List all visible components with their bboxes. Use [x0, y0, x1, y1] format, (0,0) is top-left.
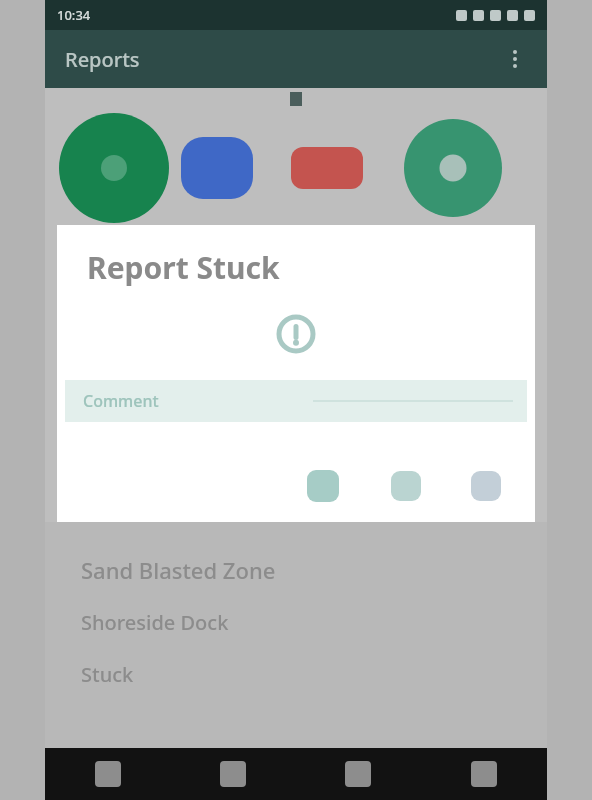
button[interactable]: Home	[45, 748, 170, 800]
button[interactable]: More options	[493, 37, 537, 81]
button[interactable]: Reports	[170, 748, 295, 800]
button[interactable]: Delete	[291, 147, 363, 189]
button[interactable]: Sync	[181, 137, 253, 199]
button[interactable]: Shoreside Dock	[45, 596, 547, 648]
button[interactable]: New report	[59, 113, 169, 223]
button[interactable]: Profile	[421, 748, 547, 800]
staticText: Sand Blasted Zone	[81, 555, 276, 585]
staticText: 10:34	[57, 6, 91, 24]
button[interactable]: Attach photo	[307, 470, 339, 502]
button[interactable]: Record	[401, 116, 505, 220]
button[interactable]: Cancel	[391, 471, 421, 501]
staticText: Stuck	[81, 661, 134, 688]
staticText: Shoreside Dock	[81, 609, 229, 636]
button[interactable]: Comment	[65, 380, 527, 422]
staticText: Reports	[65, 46, 140, 73]
button[interactable]: Submit	[471, 471, 501, 501]
button[interactable]: Map	[295, 748, 421, 800]
button[interactable]: Stuck	[45, 648, 547, 700]
staticText: Report Stuck	[87, 247, 280, 288]
button[interactable]: Sand Blasted Zone	[45, 544, 547, 596]
staticText: Comment	[83, 390, 159, 412]
